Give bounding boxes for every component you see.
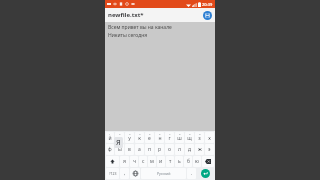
staticText: Я	[116, 138, 121, 148]
staticText: п	[148, 146, 152, 153]
button[interactable]: ы	[115, 144, 124, 155]
staticText: Всем привет вы на канале	[108, 24, 172, 31]
staticText: ф	[108, 146, 112, 153]
staticText: я	[123, 158, 126, 165]
button[interactable]: 1	[106, 132, 114, 143]
staticText: е	[148, 135, 151, 142]
button[interactable]: э	[205, 144, 214, 155]
staticText: т	[169, 158, 172, 165]
staticText: ,	[124, 170, 126, 177]
staticText: а	[138, 146, 141, 153]
staticText: и	[159, 158, 163, 165]
button[interactable]: ю	[193, 156, 201, 167]
button[interactable]: х	[205, 132, 214, 143]
button[interactable]: .	[187, 168, 196, 179]
button[interactable]: с	[139, 156, 147, 167]
staticText: 6	[159, 132, 161, 135]
staticText: 5	[149, 132, 151, 135]
staticText: м	[150, 158, 154, 165]
staticText: ь	[178, 158, 181, 165]
button[interactable]: 8	[175, 132, 184, 143]
staticText: з	[198, 135, 201, 142]
button[interactable]: 0	[195, 132, 204, 143]
staticText: ?123	[109, 171, 117, 176]
staticText: .	[191, 170, 193, 177]
staticText: у	[128, 135, 131, 142]
button[interactable]: 9	[185, 132, 194, 143]
button[interactable]: 6	[155, 132, 164, 143]
staticText: 3	[129, 132, 131, 135]
button[interactable]: м	[148, 156, 156, 167]
button[interactable]: Backspace	[202, 156, 214, 167]
button[interactable]: ,	[120, 168, 129, 179]
button[interactable]: и	[157, 156, 165, 167]
staticText: 2	[119, 132, 121, 135]
staticText: Русский	[157, 171, 171, 176]
button[interactable]: Русский	[141, 168, 186, 179]
button[interactable]: я	[120, 156, 129, 167]
staticText: 1	[109, 132, 111, 135]
button[interactable]: л	[175, 144, 184, 155]
button[interactable]: Shift	[106, 156, 119, 167]
button[interactable]: 2	[115, 132, 124, 143]
button[interactable]: ч	[130, 156, 138, 167]
staticText: в	[128, 146, 131, 153]
staticText: б	[187, 158, 190, 165]
button[interactable]: ь	[175, 156, 183, 167]
button[interactable]: в	[125, 144, 134, 155]
staticText: newfile.txt*	[108, 11, 144, 19]
button[interactable]: 5	[145, 132, 154, 143]
staticText: о	[168, 146, 171, 153]
staticText: ю	[195, 158, 199, 165]
staticText: ы	[118, 146, 122, 153]
staticText: й	[108, 135, 112, 142]
button[interactable]: 4	[135, 132, 144, 143]
staticText: 20:39	[202, 2, 213, 7]
button[interactable]: Enter	[197, 168, 214, 179]
button[interactable]: Всем привет вы на канале	[105, 22, 215, 131]
button[interactable]: о	[165, 144, 174, 155]
button[interactable]: т	[166, 156, 174, 167]
button[interactable]: Change language	[130, 168, 140, 179]
staticText: ж	[198, 146, 202, 153]
staticText: Никиты сегодня	[108, 32, 148, 39]
button[interactable]: 3	[125, 132, 134, 143]
button[interactable]: б	[184, 156, 192, 167]
staticText: л	[178, 146, 181, 153]
staticText: 0	[199, 132, 201, 135]
button[interactable]: ж	[195, 144, 204, 155]
staticText: х	[208, 135, 211, 142]
staticText: ц	[118, 135, 122, 142]
staticText: с	[142, 158, 145, 165]
button[interactable]: 7	[165, 132, 174, 143]
button[interactable]: а	[135, 144, 144, 155]
staticText: 7	[169, 132, 171, 135]
staticText: ч	[133, 158, 136, 165]
staticText: г	[168, 135, 171, 142]
staticText: к	[138, 135, 141, 142]
staticText: 8	[179, 132, 181, 135]
staticText: 4	[139, 132, 141, 135]
staticText: 9	[189, 132, 191, 135]
staticText: э	[208, 146, 211, 153]
staticText: д	[188, 146, 192, 153]
button[interactable]: ?123	[106, 168, 119, 179]
button[interactable]: д	[185, 144, 194, 155]
staticText: р	[158, 146, 162, 153]
staticText: щ	[187, 135, 192, 142]
button[interactable]: ф	[106, 144, 114, 155]
button[interactable]: р	[155, 144, 164, 155]
button[interactable]: Save	[203, 11, 212, 20]
button[interactable]: п	[145, 144, 154, 155]
staticText: н	[158, 135, 162, 142]
staticText: ш	[177, 135, 182, 142]
